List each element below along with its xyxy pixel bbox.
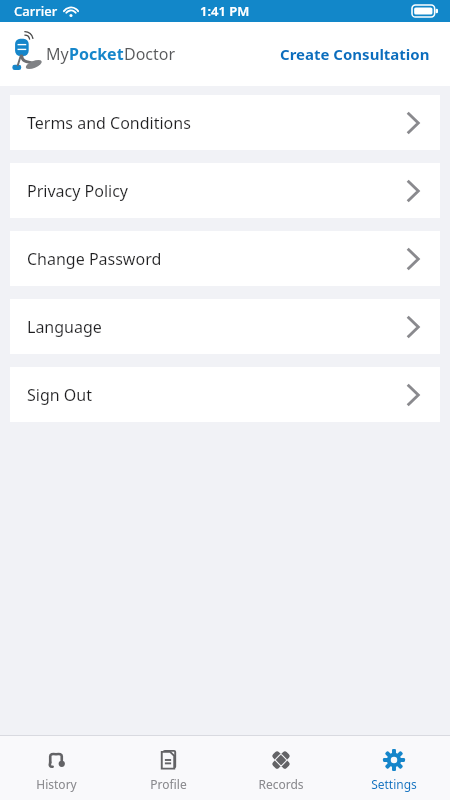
button[interactable]: My <box>11 35 176 73</box>
staticText: Doctor <box>124 43 176 65</box>
button[interactable]: Create Consultation <box>276 40 434 68</box>
staticText: 1:41 PM <box>200 2 250 20</box>
button[interactable]: Terms and Conditions <box>10 95 440 150</box>
staticText: Sign Out <box>27 384 92 406</box>
staticText: Carrier <box>14 2 58 20</box>
staticText: Change Password <box>27 248 162 270</box>
staticText: Settings <box>371 776 417 792</box>
button[interactable]: Privacy Policy <box>10 163 440 218</box>
staticText: Records <box>258 776 304 792</box>
button[interactable]: Language <box>10 299 440 354</box>
button[interactable]: Settings <box>337 736 450 800</box>
staticText: Privacy Policy <box>27 180 128 202</box>
staticText: History <box>36 776 77 792</box>
staticText: Create Consultation <box>280 44 430 64</box>
staticText: Terms and Conditions <box>27 112 191 134</box>
staticText: Profile <box>150 776 187 792</box>
button[interactable]: Change Password <box>10 231 440 286</box>
button[interactable]: Profile <box>112 736 224 800</box>
button[interactable]: History <box>0 736 112 800</box>
staticText: My <box>46 43 69 65</box>
button[interactable]: Records <box>224 736 337 800</box>
staticText: Pocket <box>69 43 124 65</box>
staticText: Language <box>27 316 102 338</box>
button[interactable]: Sign Out <box>10 367 440 422</box>
